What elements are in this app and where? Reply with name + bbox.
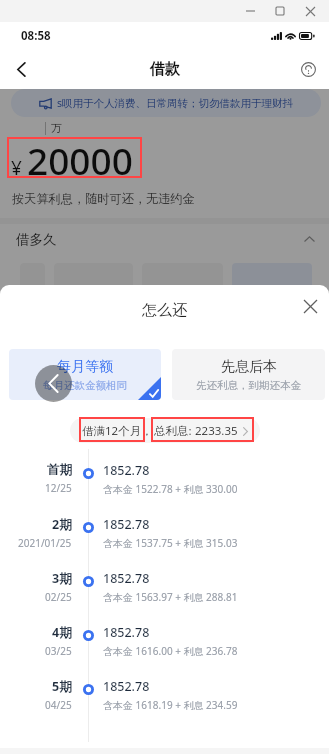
staticText: s呗用于个人消费、日常周转；切勿借款用于理财抖 <box>57 96 294 110</box>
staticText: 2233.35 <box>195 423 238 439</box>
button[interactable]: s呗用于个人消费、日常周转；切勿借款用于理财抖 <box>11 89 321 117</box>
staticText: 03/25 <box>45 644 72 658</box>
button[interactable]: 借多久 <box>16 224 315 254</box>
staticText: 20000 <box>27 135 133 185</box>
button[interactable]: 首期 <box>0 455 329 509</box>
button[interactable]: 先息后本 <box>172 349 325 400</box>
staticText: 借款 <box>150 60 180 79</box>
button[interactable]: Back <box>35 365 72 402</box>
staticText: 1852.78 <box>103 624 150 641</box>
button[interactable]: Minimize <box>235 0 265 22</box>
button[interactable]: Maximize <box>265 0 295 22</box>
button[interactable] <box>20 263 45 294</box>
button[interactable] <box>232 263 312 294</box>
staticText: 2021/01/25 <box>18 536 72 550</box>
staticText: 含本金 1537.75 + 利息 315.03 <box>103 536 238 550</box>
button[interactable]: Close <box>295 0 325 22</box>
staticText: 万 <box>51 121 62 135</box>
staticText: 总利息: <box>154 423 192 439</box>
staticText: ¥ <box>11 155 22 181</box>
staticText: 借满12个月， <box>82 423 153 439</box>
staticText: 1852.78 <box>103 570 150 587</box>
staticText: 02/25 <box>45 590 72 604</box>
staticText: 首期 <box>47 462 72 478</box>
button[interactable]: 每月等额 <box>9 349 161 400</box>
button[interactable] <box>0 89 329 754</box>
staticText: 08:58 <box>21 28 51 44</box>
staticText: 12/25 <box>45 481 72 495</box>
staticText: 先息后本 <box>221 358 277 376</box>
button[interactable]: Back <box>0 50 42 89</box>
button[interactable]: 5期 <box>0 671 329 725</box>
staticText: 1852.78 <box>103 462 150 479</box>
staticText: 按天算利息，随时可还，无违约金 <box>12 191 195 206</box>
button[interactable] <box>54 263 133 294</box>
button[interactable]: 借满12个月， <box>70 418 260 443</box>
staticText: 含本金 1563.97 + 利息 288.81 <box>103 590 238 604</box>
staticText: 含本金 1616.00 + 利息 236.78 <box>103 644 238 658</box>
staticText: 含本金 1522.78 + 利息 330.00 <box>103 482 238 496</box>
staticText: 5期 <box>52 678 72 695</box>
button[interactable]: 2期 <box>0 509 329 563</box>
staticText: 3期 <box>52 570 72 587</box>
button[interactable]: 3期 <box>0 563 329 617</box>
button[interactable]: 4期 <box>0 617 329 671</box>
button[interactable]: Help <box>287 50 329 89</box>
staticText: 怎么还 <box>142 301 187 320</box>
staticText: 每月等额 <box>57 358 113 376</box>
button[interactable]: Close <box>291 287 329 325</box>
staticText: 含本金 1618.19 + 利息 234.59 <box>103 698 238 712</box>
staticText: 先还利息，到期还本金 <box>196 379 301 392</box>
staticText: 借多久 <box>16 231 57 248</box>
staticText: 4期 <box>52 624 72 641</box>
staticText: 2期 <box>52 516 72 533</box>
staticText: 1852.78 <box>103 516 150 533</box>
staticText: 1852.78 <box>103 678 150 695</box>
staticText: 04/25 <box>45 698 72 712</box>
button[interactable] <box>142 263 223 294</box>
staticText: 每月还款金额相同 <box>43 379 127 392</box>
